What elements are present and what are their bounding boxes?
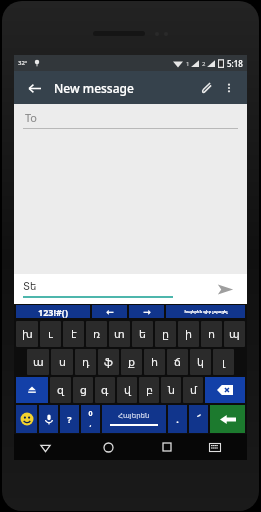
button[interactable]: Attach	[195, 76, 219, 100]
staticText: ֆ	[104, 356, 113, 369]
button[interactable]: ?	[60, 405, 79, 433]
button[interactable]: ՜	[189, 405, 208, 433]
button[interactable]: Enter	[210, 405, 245, 433]
staticText: Հայերեն	[118, 412, 150, 420]
button[interactable]: Shift	[16, 377, 48, 403]
button[interactable]: խ	[16, 321, 38, 347]
button[interactable]: լ	[213, 349, 234, 375]
button[interactable]: 0 ,	[81, 405, 100, 433]
staticText: հ	[151, 356, 158, 369]
button[interactable]: վ	[117, 377, 137, 403]
button[interactable]: զ	[50, 377, 71, 403]
button[interactable]: դ	[75, 349, 96, 375]
button[interactable]: Home	[77, 434, 140, 460]
staticText: ք	[128, 356, 135, 369]
button[interactable]: 123!#()	[16, 305, 90, 318]
button[interactable]: ն	[161, 377, 181, 403]
staticText: հայերեն գիր չպացել	[184, 309, 228, 314]
staticText: տ	[114, 328, 125, 341]
staticText: →	[143, 307, 151, 317]
staticText: լ	[222, 356, 225, 369]
button[interactable]: .	[168, 405, 187, 433]
button[interactable]: մ	[183, 377, 203, 403]
button[interactable]: ց	[73, 377, 93, 403]
button[interactable]: ա	[27, 349, 49, 375]
staticText: 1	[186, 60, 190, 68]
button[interactable]: ւ	[40, 321, 61, 347]
button[interactable]: Emoji	[16, 405, 37, 433]
button[interactable]: տ	[109, 321, 130, 347]
button[interactable]: ք	[121, 349, 142, 375]
button[interactable]: Recent apps	[140, 434, 193, 460]
staticText: .	[176, 413, 179, 425]
button[interactable]: Backspace	[205, 377, 245, 403]
staticText: ռ	[93, 328, 101, 341]
button[interactable]: պ	[224, 321, 245, 347]
button[interactable]: ֆ	[98, 349, 119, 375]
button[interactable]: Keyboard	[193, 434, 237, 460]
button[interactable]: Back	[22, 76, 46, 100]
staticText: ?	[67, 413, 72, 425]
staticText: ն	[168, 384, 175, 397]
button[interactable]: ս	[51, 349, 73, 375]
staticText: խ	[22, 328, 33, 341]
staticText: ի	[185, 328, 192, 341]
staticText: զ	[57, 384, 64, 397]
button[interactable]: ճ	[167, 349, 188, 375]
button[interactable]: ը	[155, 321, 176, 347]
button[interactable]: Send	[212, 276, 238, 302]
staticText: կ	[197, 356, 204, 369]
button[interactable]: Back	[14, 434, 77, 460]
staticText: գ	[101, 384, 109, 397]
staticText: մ	[190, 384, 197, 397]
button[interactable]: Space	[102, 405, 166, 433]
staticText: ս	[59, 356, 66, 369]
button[interactable]: ո	[201, 321, 222, 347]
staticText: ա	[33, 356, 44, 369]
button[interactable]: կ	[190, 349, 211, 375]
staticText: ց	[80, 384, 87, 397]
staticText: 2	[202, 60, 206, 68]
staticText: վ	[124, 384, 131, 397]
staticText: Տե	[23, 281, 37, 293]
button[interactable]: →	[129, 305, 164, 318]
staticText: ՜	[197, 414, 201, 424]
button[interactable]: է	[63, 321, 84, 347]
staticText: ե	[139, 328, 146, 341]
button[interactable]: գ	[95, 377, 115, 403]
staticText: 32°	[18, 59, 28, 67]
staticText: To	[25, 110, 38, 125]
button[interactable]: ի	[178, 321, 199, 347]
button[interactable]: բ	[139, 377, 159, 403]
button[interactable]: ե	[132, 321, 153, 347]
staticText: 0 ,	[88, 409, 93, 429]
button[interactable]: ռ	[86, 321, 107, 347]
staticText: դ	[82, 356, 90, 369]
button[interactable]: հայերեն գիր չպացել	[166, 305, 245, 318]
staticText: 123!#()	[38, 306, 68, 318]
staticText: ←	[106, 307, 114, 317]
button[interactable]: Voice input	[39, 405, 58, 433]
button[interactable]: More options	[219, 78, 239, 98]
staticText: 5:18	[227, 58, 243, 69]
staticText: ճ	[174, 356, 181, 369]
staticText: է	[71, 328, 77, 341]
staticText: պ	[229, 328, 240, 341]
staticText: ւ	[48, 328, 53, 341]
button[interactable]: հ	[144, 349, 165, 375]
staticText: ո	[208, 328, 215, 341]
staticText: բ	[146, 384, 153, 397]
button[interactable]: ←	[92, 305, 127, 318]
staticText: ը	[162, 328, 169, 341]
staticText: New message	[54, 80, 134, 96]
